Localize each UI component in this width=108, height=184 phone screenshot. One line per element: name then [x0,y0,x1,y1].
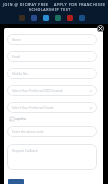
button[interactable]: Twitter [43,15,49,21]
button[interactable]: YouTube [67,15,73,21]
staticText: Select Your Preferred DICE branch [12,89,63,93]
button[interactable]: Request Callback [7,144,97,170]
button[interactable]: Mobile No. [7,68,97,79]
button[interactable]: Close [97,25,104,32]
button[interactable]: Enter the above code [7,126,97,137]
button[interactable]: Name [7,34,97,45]
button[interactable]: PAY FREE SCHOLARSHIP TEST [29,2,71,12]
button[interactable] [8,179,24,184]
staticText: Email [12,55,21,59]
button[interactable]: Email [7,51,97,62]
button[interactable]: Facebook [31,15,37,21]
staticText: Mobile No. [12,72,29,76]
button[interactable]: JOIN @ DICE [3,2,30,7]
staticText: Name [12,38,21,42]
button[interactable]: Select Your Preferred DICE branch [7,85,97,96]
staticText: Enter the above code [12,130,44,134]
staticText: Request Callback [12,149,38,153]
button[interactable]: APPLY FOR FRANCHISEE [54,2,106,7]
button[interactable]: WhatsApp [55,15,61,21]
button[interactable]: Instagram [19,15,25,21]
button[interactable]: Select Your Preferred Grade [7,102,97,113]
staticText: captcha [15,117,27,121]
staticText: Select Your Preferred Grade [12,106,54,110]
button[interactable]: LinkedIn [79,15,85,21]
